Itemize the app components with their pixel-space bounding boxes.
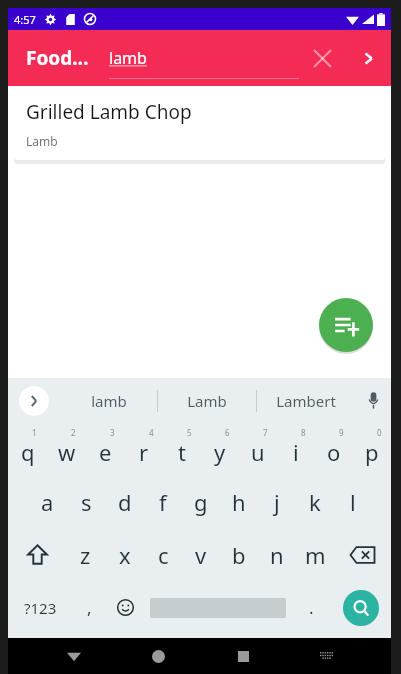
button[interactable]: z xyxy=(66,528,105,581)
button[interactable]: h xyxy=(220,475,258,528)
button[interactable]: a xyxy=(28,475,67,528)
staticText: j xyxy=(274,487,280,517)
staticText: b xyxy=(232,540,246,570)
staticText: a xyxy=(41,487,54,517)
staticText: 0 xyxy=(377,427,382,438)
staticText: z xyxy=(80,540,91,570)
button[interactable]: Clear search xyxy=(299,35,345,81)
staticText: u xyxy=(251,437,265,467)
staticText: h xyxy=(232,487,246,517)
button[interactable]: d xyxy=(106,475,144,528)
staticText: 4:57 xyxy=(14,12,36,27)
button[interactable]: b xyxy=(220,528,258,581)
button[interactable]: f xyxy=(144,475,182,528)
button[interactable]: Submit search xyxy=(345,35,391,81)
button[interactable]: 4 xyxy=(125,423,163,475)
button[interactable]: 1 xyxy=(8,423,47,475)
button[interactable]: 7 xyxy=(239,423,277,475)
button[interactable]: Lambert xyxy=(257,378,355,423)
button[interactable]: More suggestions xyxy=(19,386,49,416)
button[interactable]: Add to list xyxy=(319,298,373,352)
button[interactable]: , xyxy=(72,581,106,634)
staticText: i xyxy=(293,437,299,467)
staticText: 6 xyxy=(225,427,230,438)
button[interactable]: Recent apps xyxy=(220,638,266,674)
staticText: Grilled Lamb Chop xyxy=(26,99,192,125)
staticText: m xyxy=(305,540,326,570)
button[interactable]: Search xyxy=(343,590,379,626)
staticText: p xyxy=(365,437,379,467)
staticText: , xyxy=(87,596,92,619)
button[interactable]: . xyxy=(292,581,330,634)
staticText: q xyxy=(21,437,35,467)
staticText: 5 xyxy=(187,427,192,438)
button[interactable]: Back xyxy=(51,638,97,674)
staticText: 2 xyxy=(71,427,76,438)
staticText: lamb xyxy=(109,47,147,69)
staticText: . xyxy=(309,596,314,619)
button[interactable]: 6 xyxy=(201,423,239,475)
button[interactable]: s xyxy=(67,475,106,528)
staticText: y xyxy=(214,437,226,467)
staticText: g xyxy=(194,487,208,517)
button[interactable]: Grilled Lamb Chop xyxy=(14,90,385,160)
button[interactable]: c xyxy=(144,528,182,581)
button[interactable]: ?123 xyxy=(8,581,72,634)
button[interactable]: n xyxy=(258,528,296,581)
button[interactable]: v xyxy=(182,528,220,581)
button[interactable]: x xyxy=(105,528,144,581)
staticText: Lambert xyxy=(276,391,336,411)
button[interactable]: Emoji xyxy=(106,581,144,634)
staticText: 4 xyxy=(149,427,154,438)
button[interactable]: 9 xyxy=(315,423,353,475)
staticText: c xyxy=(158,540,169,570)
button[interactable]: lamb xyxy=(109,30,299,86)
staticText: r xyxy=(139,437,149,467)
staticText: ?123 xyxy=(24,598,57,618)
button[interactable]: 2 xyxy=(47,423,86,475)
button[interactable]: Backspace xyxy=(334,528,391,581)
button[interactable]: 5 xyxy=(163,423,201,475)
staticText: t xyxy=(178,437,186,467)
button[interactable]: lamb xyxy=(60,378,157,423)
button[interactable]: m xyxy=(296,528,334,581)
button[interactable]: Lamb xyxy=(158,378,256,423)
staticText: e xyxy=(99,437,112,467)
button[interactable]: g xyxy=(182,475,220,528)
staticText: k xyxy=(309,487,321,517)
button[interactable]: 0 xyxy=(353,423,391,475)
button[interactable]: Food… xyxy=(8,45,97,71)
button[interactable]: j xyxy=(258,475,296,528)
button[interactable]: Voice input xyxy=(355,378,391,423)
staticText: 3 xyxy=(110,427,115,438)
staticText: s xyxy=(81,487,92,517)
staticText: o xyxy=(327,437,341,467)
staticText: Food… xyxy=(26,45,89,71)
staticText: 8 xyxy=(301,427,306,438)
staticText: l xyxy=(350,487,356,517)
button[interactable]: Home xyxy=(135,638,181,674)
staticText: 9 xyxy=(339,427,344,438)
staticText: 7 xyxy=(263,427,268,438)
staticText: v xyxy=(195,540,207,570)
staticText: lamb xyxy=(91,391,127,411)
staticText: w xyxy=(58,437,76,467)
staticText: 1 xyxy=(32,427,37,438)
button[interactable]: l xyxy=(334,475,372,528)
button[interactable]: 3 xyxy=(86,423,125,475)
button[interactable]: Shift xyxy=(8,528,66,581)
staticText: Lamb xyxy=(26,133,58,149)
button[interactable]: k xyxy=(296,475,334,528)
staticText: f xyxy=(159,487,167,517)
staticText: n xyxy=(270,540,284,570)
staticText: d xyxy=(118,487,132,517)
button[interactable]: Switch keyboard xyxy=(304,638,350,674)
button[interactable]: Space xyxy=(144,581,292,634)
staticText: x xyxy=(119,540,131,570)
button[interactable]: 8 xyxy=(277,423,315,475)
staticText: Lamb xyxy=(187,391,227,411)
